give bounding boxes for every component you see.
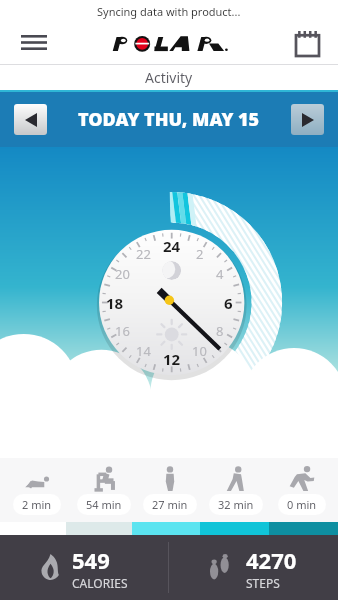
staticText: 4: [216, 265, 224, 283]
button[interactable]: 27 min: [137, 461, 203, 519]
staticText: TODAY THU, MAY 15: [78, 107, 260, 132]
staticText: Activity: [145, 68, 193, 87]
button[interactable]: Activity: [0, 65, 338, 90]
staticText: 27 min: [152, 497, 188, 512]
staticText: STEPS: [246, 575, 280, 591]
staticText: 20: [115, 265, 130, 283]
staticText: CALORIES: [72, 575, 128, 591]
staticText: 12: [163, 349, 181, 369]
staticText: 8: [216, 322, 224, 340]
staticText: 10: [192, 342, 207, 360]
button[interactable]: 549: [0, 535, 168, 600]
button[interactable]: 2 min: [3, 461, 70, 519]
button[interactable]: Menu: [16, 25, 52, 61]
staticText: 2: [196, 245, 204, 263]
staticText: 6: [224, 293, 233, 313]
staticText: 4270: [246, 545, 297, 575]
staticText: 549: [72, 545, 110, 575]
staticText: 14: [136, 342, 151, 360]
button[interactable]: Next day: [291, 104, 324, 135]
staticText: 54 min: [86, 497, 122, 512]
button[interactable]: 32 min: [203, 461, 269, 519]
staticText: 18: [106, 293, 124, 313]
staticText: 2 min: [22, 497, 52, 512]
button[interactable]: Previous day: [14, 104, 47, 135]
staticText: Syncing data with product...: [97, 4, 241, 19]
button[interactable]: 0 min: [269, 461, 335, 519]
button[interactable]: 54 min: [70, 461, 137, 519]
staticText: 0 min: [287, 497, 317, 512]
button[interactable]: 4270: [169, 535, 338, 600]
staticText: 16: [115, 322, 130, 340]
staticText: 22: [136, 245, 151, 263]
staticText: 24: [163, 236, 181, 256]
button[interactable]: Diary: [290, 26, 324, 60]
staticText: 32 min: [218, 497, 254, 512]
